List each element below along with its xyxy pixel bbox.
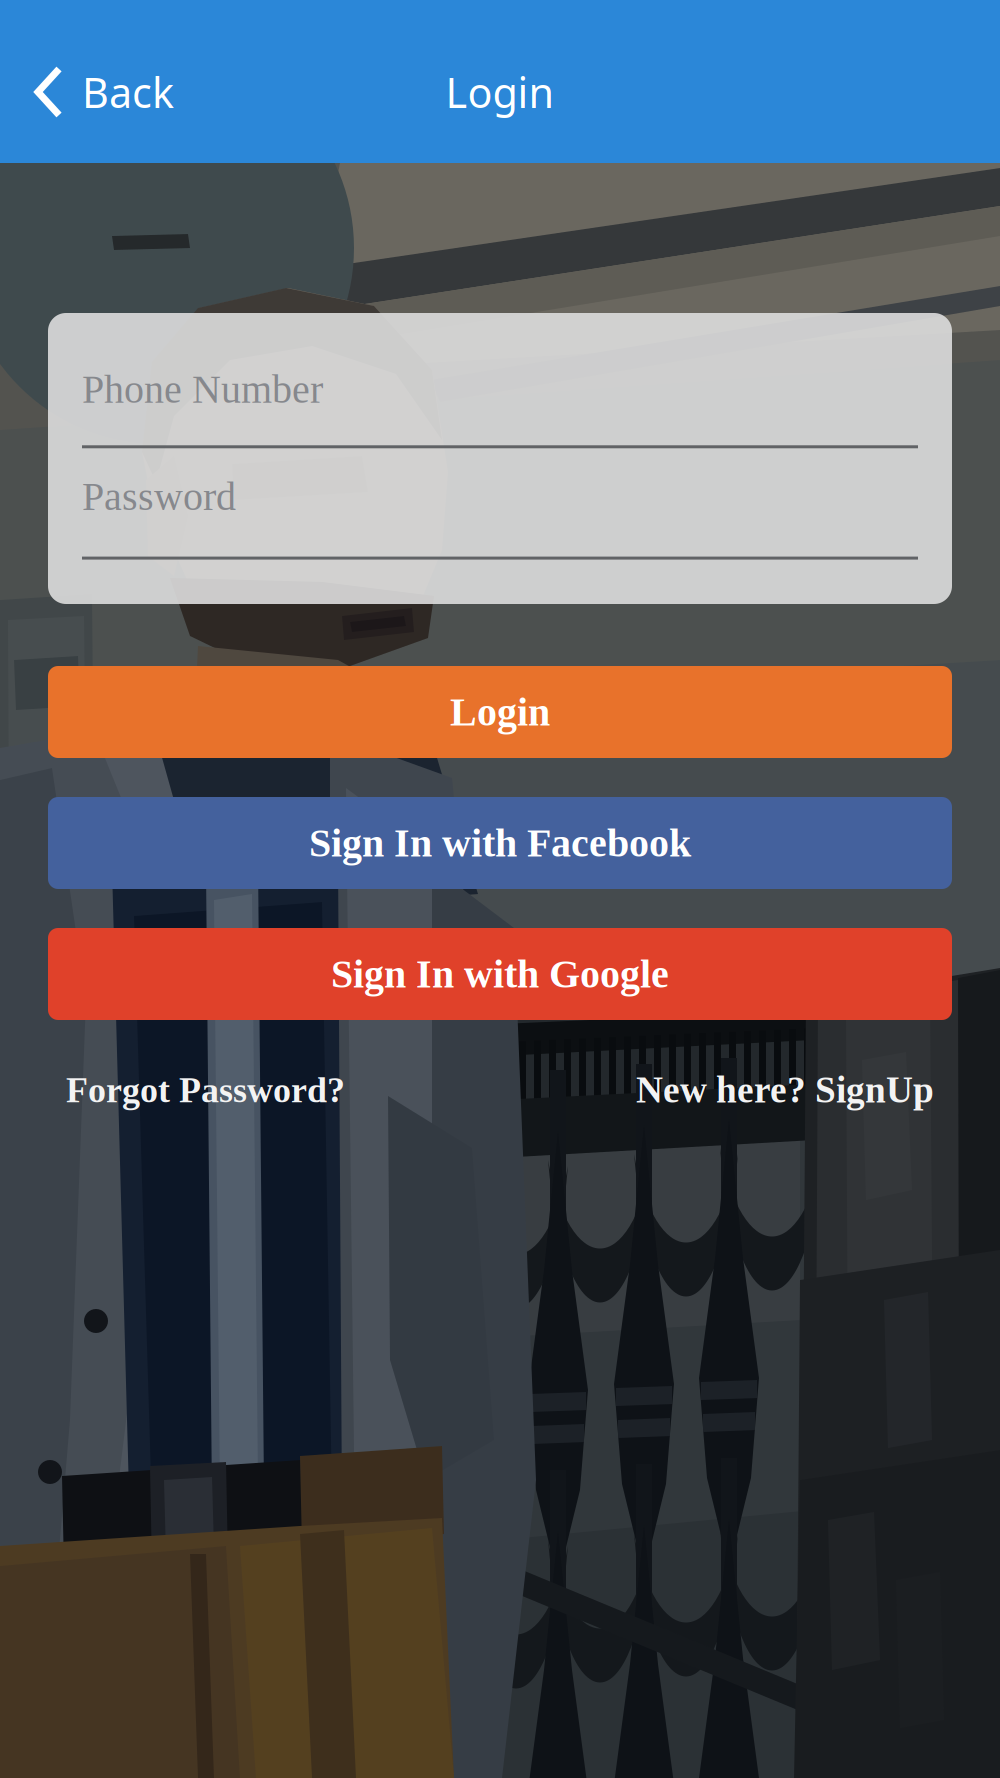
button[interactable]: Forgot Password?: [66, 1070, 345, 1110]
staticText: Login: [445, 65, 554, 119]
staticText: Password: [82, 474, 236, 519]
button[interactable]: Back: [0, 60, 198, 124]
staticText: Sign In with Facebook: [309, 821, 691, 865]
button[interactable]: Sign In with Facebook: [48, 797, 952, 889]
staticText: Login: [450, 690, 550, 734]
button[interactable]: New here? SignUp: [636, 1069, 934, 1111]
staticText: Phone Number: [82, 367, 323, 411]
button[interactable]: Login: [48, 666, 952, 758]
staticText: Forgot Password?: [66, 1070, 345, 1110]
staticText: New here? SignUp: [636, 1069, 934, 1111]
staticText: Back: [82, 65, 174, 119]
button[interactable]: Sign In with Google: [48, 928, 952, 1020]
staticText: Sign In with Google: [331, 952, 669, 996]
